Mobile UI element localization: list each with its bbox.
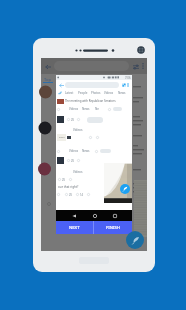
button[interactable]: Latest xyxy=(63,89,76,96)
button[interactable]: NEXT xyxy=(56,221,93,234)
button[interactable]: Action xyxy=(57,150,60,153)
staticText: our that right? xyxy=(58,185,79,189)
staticText: 7:06 xyxy=(125,76,131,80)
button[interactable]: Action xyxy=(47,202,51,206)
button[interactable]: More options xyxy=(141,62,145,70)
button[interactable]: Action xyxy=(108,108,111,111)
button[interactable]: Compose Tweet xyxy=(120,184,130,194)
staticText: NEXT xyxy=(69,225,80,231)
button[interactable]: Action xyxy=(76,193,79,196)
button[interactable]: People xyxy=(76,89,89,96)
button[interactable]: Action xyxy=(67,159,70,162)
button[interactable]: Action xyxy=(77,159,80,162)
staticText: Videos xyxy=(69,149,79,153)
button[interactable]: More options xyxy=(126,83,130,87)
button[interactable]: Action xyxy=(67,118,70,121)
button[interactable]: FINISH xyxy=(94,221,132,234)
button[interactable]: Filter xyxy=(121,82,126,87)
staticText: People xyxy=(78,91,88,95)
staticText: Top xyxy=(44,77,51,82)
staticText: 25 xyxy=(69,193,72,197)
staticText: Videos xyxy=(73,128,83,132)
staticText: 25 xyxy=(71,118,74,122)
button[interactable]: Action xyxy=(87,193,90,196)
staticText: The meeting with Republican Senators xyxy=(65,99,116,103)
staticText: 25 xyxy=(62,178,65,182)
staticText: Videos xyxy=(73,170,83,174)
staticText: FINISH xyxy=(106,225,120,231)
button[interactable]: Compose Tweet xyxy=(126,231,144,249)
staticText: 14 xyxy=(80,193,83,197)
staticText: News xyxy=(82,149,90,153)
button[interactable]: Action xyxy=(96,136,99,139)
button[interactable]: Home xyxy=(91,212,98,219)
button[interactable]: Action xyxy=(65,193,68,196)
button[interactable]: Recents xyxy=(111,212,118,219)
button[interactable]: Action xyxy=(77,118,80,121)
staticText: Ne xyxy=(95,107,99,111)
staticText: News xyxy=(82,107,90,111)
button[interactable]: Back xyxy=(58,82,64,88)
staticText: News xyxy=(118,91,126,95)
button[interactable]: Action xyxy=(58,178,61,181)
staticText: Videos xyxy=(104,91,114,95)
staticText: Photos xyxy=(91,91,101,95)
button[interactable]: Action xyxy=(111,202,115,206)
button[interactable]: Action xyxy=(57,193,60,196)
button[interactable]: Top xyxy=(56,89,63,96)
button[interactable]: News xyxy=(115,89,128,96)
staticText: 25 xyxy=(71,159,74,163)
button[interactable]: Action xyxy=(89,136,92,139)
button[interactable]: Back xyxy=(70,212,77,219)
button[interactable]: Filter xyxy=(131,62,140,71)
button[interactable]: Action xyxy=(57,108,60,111)
button[interactable]: Action xyxy=(95,150,98,153)
staticText: Sochi xyxy=(59,136,65,139)
staticText: Latest xyxy=(65,91,74,95)
staticText: Videos xyxy=(69,107,79,111)
button[interactable]: Videos xyxy=(102,89,115,96)
button[interactable]: Back xyxy=(43,62,52,71)
button[interactable]: Photos xyxy=(89,89,102,96)
button[interactable]: Action xyxy=(69,178,72,181)
